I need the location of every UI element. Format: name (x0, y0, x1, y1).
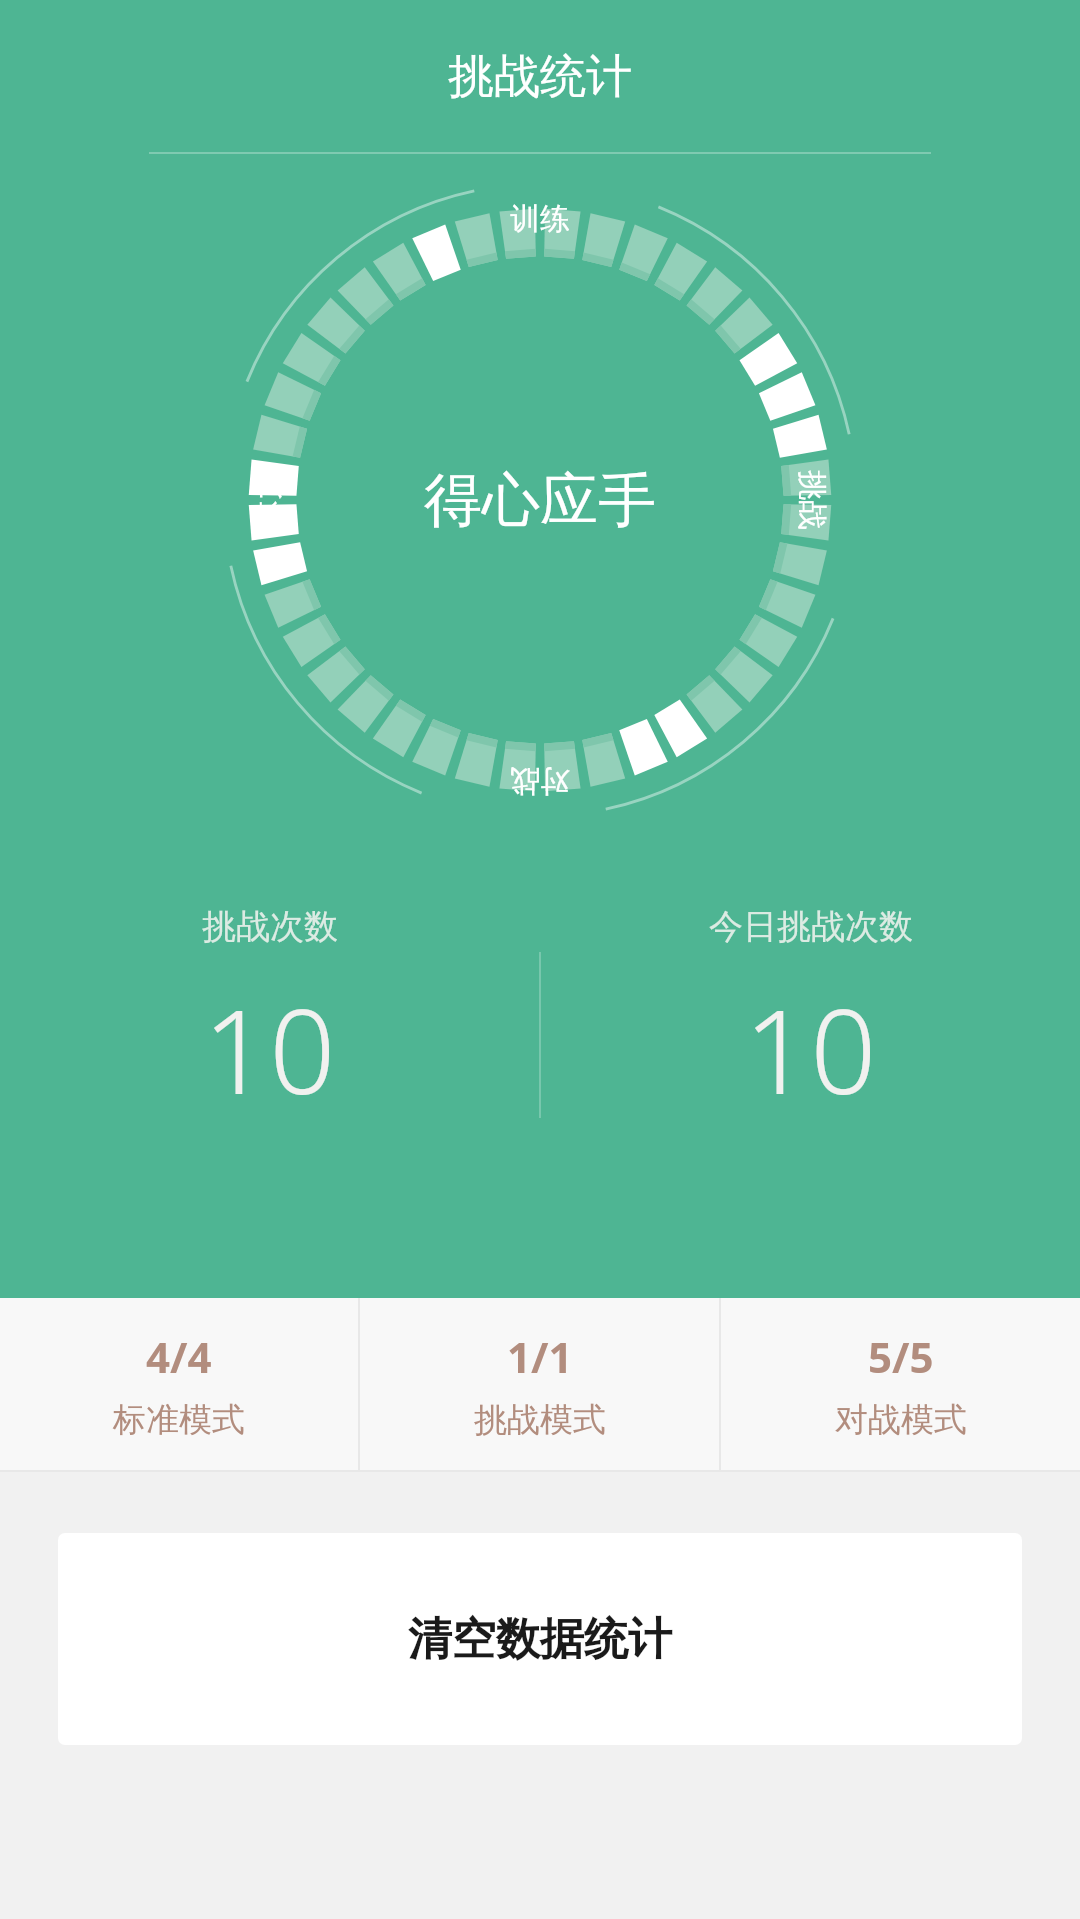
staticText: 对战 (510, 762, 570, 800)
staticText: 得心应手 (424, 464, 656, 537)
button[interactable]: 清空数据统计 (58, 1533, 1022, 1745)
staticText: 挑战次数 (202, 905, 338, 948)
staticText: 10 (203, 970, 336, 1128)
staticText: 对战模式 (835, 1399, 967, 1441)
staticText: 5/5 (868, 1328, 934, 1385)
staticText: 10 (744, 970, 877, 1128)
staticText: 挑战 (793, 470, 831, 530)
staticText: 挑战模式 (474, 1399, 606, 1441)
staticText: 挑战统计 (448, 48, 632, 106)
staticText: 标准模式 (113, 1399, 245, 1441)
staticText: 1/1 (507, 1328, 573, 1385)
staticText: 训练 (510, 200, 570, 238)
button[interactable]: 今日挑战次数 (541, 905, 1080, 1128)
button[interactable]: 4/4 (0, 1298, 358, 1470)
staticText: 4/4 (146, 1328, 212, 1385)
button[interactable]: 5/5 (721, 1298, 1080, 1470)
staticText: 清空数据统计 (408, 1612, 672, 1667)
button[interactable]: 挑战次数 (0, 905, 539, 1128)
staticText: 今日挑战次数 (709, 905, 913, 948)
button[interactable]: 1/1 (360, 1298, 719, 1470)
staticText: 体力 (249, 470, 287, 530)
